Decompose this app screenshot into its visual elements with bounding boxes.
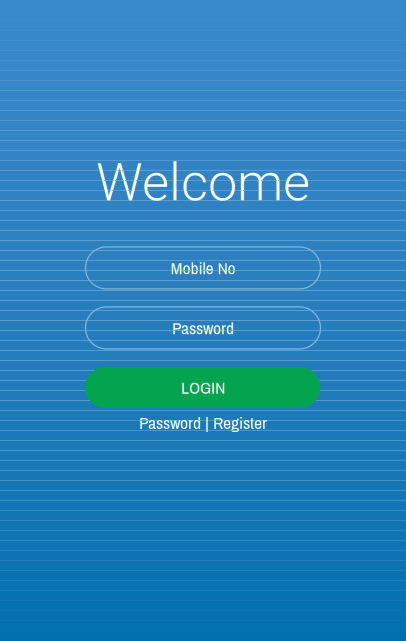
staticText: Welcome	[96, 152, 310, 213]
staticText: LOGIN	[181, 376, 225, 399]
staticText: Password	[139, 411, 201, 434]
staticText: Password	[172, 316, 234, 340]
staticText: Mobile No	[170, 256, 235, 280]
staticText: Register	[213, 411, 267, 434]
button[interactable]: Mobile No	[85, 247, 320, 289]
button[interactable]: LOGIN	[85, 367, 320, 408]
button[interactable]: Register	[213, 411, 267, 434]
staticText: |	[205, 411, 209, 434]
button[interactable]: Password	[139, 411, 201, 434]
button[interactable]: Password	[85, 307, 320, 349]
